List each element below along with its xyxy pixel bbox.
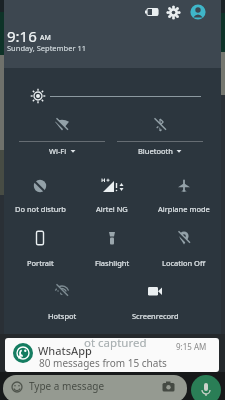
button[interactable]: Hotspot <box>16 283 108 321</box>
button[interactable]: WhatsApp <box>5 338 219 372</box>
button[interactable]: Type a message <box>3 375 187 400</box>
button[interactable]: Location Off <box>148 230 220 268</box>
button[interactable] <box>166 5 181 20</box>
button[interactable]: Airtel NG <box>76 178 148 214</box>
button[interactable]: Wi-Fi <box>16 117 108 156</box>
button[interactable]: Portrait <box>4 230 76 268</box>
staticText: Airplane mode <box>158 204 210 214</box>
button[interactable]: Screenrecord <box>109 283 201 321</box>
button[interactable]: Airplane mode <box>148 178 220 214</box>
button[interactable]: Do not disturb <box>4 178 76 214</box>
staticText: ot captured <box>84 335 147 351</box>
staticText: Airtel NG <box>96 204 128 214</box>
button[interactable] <box>190 4 206 20</box>
button[interactable] <box>144 7 160 17</box>
staticText: Type a message <box>29 379 105 393</box>
button[interactable]: Flashlight <box>76 230 148 268</box>
staticText: WhatsApp <box>38 343 92 358</box>
staticText: 9:15 AM <box>176 341 207 352</box>
staticText: 80 messages from 15 chats <box>39 356 167 370</box>
staticText: Do not disturb <box>15 204 66 214</box>
staticText: Bluetooth <box>138 146 173 156</box>
staticText: Screenrecord <box>132 311 179 321</box>
staticText: Location Off <box>162 258 206 268</box>
button[interactable] <box>30 88 46 104</box>
button[interactable]: Bluetooth <box>114 117 206 156</box>
staticText: Portrait <box>27 258 54 268</box>
staticText: Sunday, September 11 <box>7 43 87 53</box>
staticText: AM <box>40 33 51 43</box>
staticText: 9:16 <box>7 26 37 46</box>
staticText: Flashlight <box>95 258 130 268</box>
staticText: Hotspot <box>48 311 77 321</box>
button[interactable] <box>191 375 221 400</box>
staticText: Wi-Fi <box>49 146 67 156</box>
